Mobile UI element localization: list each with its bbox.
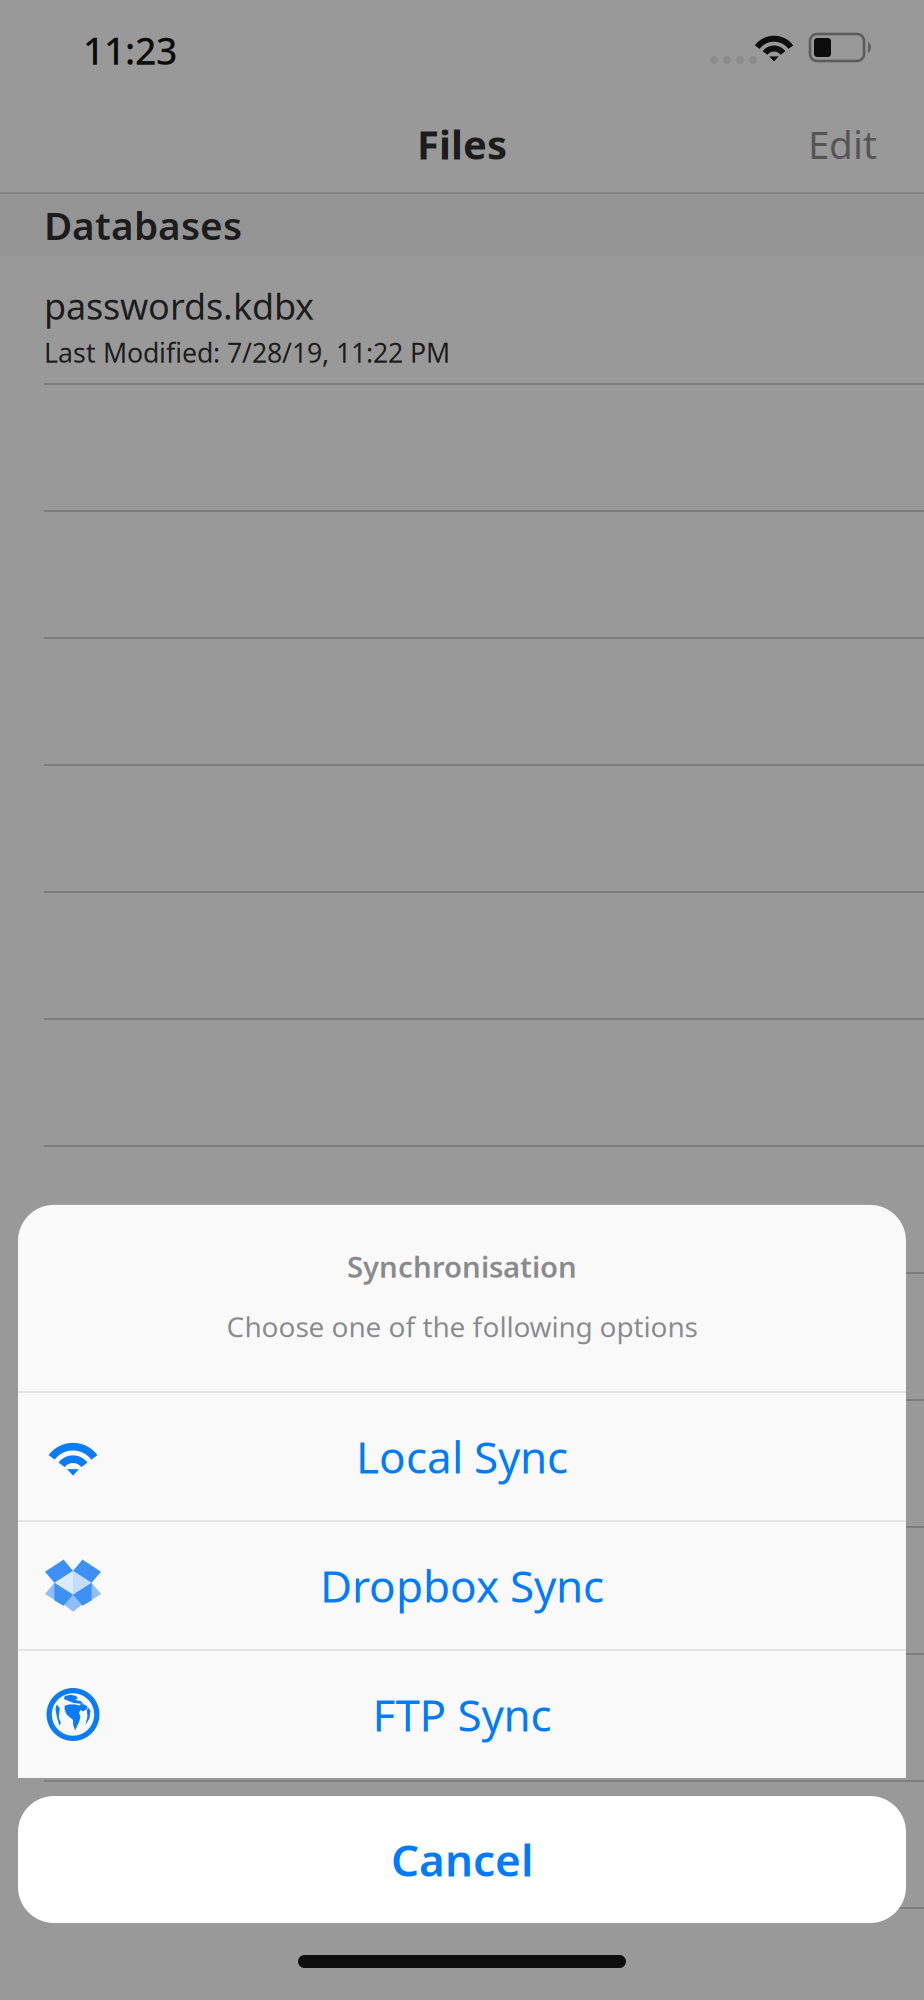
button[interactable]: Edit — [788, 102, 897, 186]
button[interactable]: Dropbox Sync — [18, 1522, 906, 1649]
staticText: Last Modified: 7/28/19, 11:22 PM — [44, 335, 450, 370]
staticText: Synchronisation — [347, 1247, 577, 1286]
staticText: Edit — [808, 118, 877, 170]
button[interactable]: passwords.kdbx — [0, 256, 924, 383]
staticText: Dropbox Sync — [320, 1556, 604, 1615]
staticText: Local Sync — [356, 1427, 568, 1486]
staticText: passwords.kdbx — [44, 282, 314, 330]
button[interactable]: Cancel — [18, 1796, 906, 1923]
staticText: FTP Sync — [372, 1685, 551, 1744]
staticText: Files — [417, 117, 507, 170]
staticText: Choose one of the following options — [226, 1308, 697, 1345]
button[interactable]: FTP Sync — [18, 1651, 906, 1778]
staticText: 11:23 — [83, 25, 177, 75]
staticText: Databases — [44, 199, 242, 251]
button[interactable]: Local Sync — [18, 1393, 906, 1520]
staticText: Cancel — [391, 1830, 533, 1889]
